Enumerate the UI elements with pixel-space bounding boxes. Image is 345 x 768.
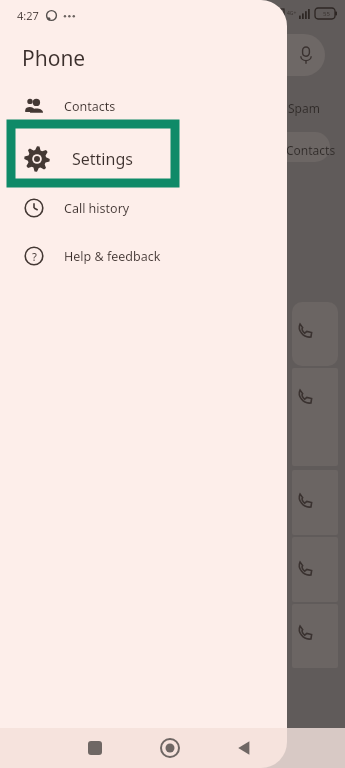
staticText: ? <box>32 249 37 264</box>
staticText: Spam <box>288 100 320 116</box>
button[interactable]: Recent apps <box>88 741 102 755</box>
staticText: 4G+ <box>287 10 297 17</box>
staticText: Contacts <box>286 142 336 158</box>
other: Voice search <box>296 45 316 65</box>
button[interactable]: Home <box>160 738 180 758</box>
staticText: 4:27 <box>17 8 39 23</box>
button[interactable]: ? <box>0 241 287 271</box>
staticText: Call history <box>64 200 130 217</box>
staticText: 55 <box>323 10 330 18</box>
button[interactable]: Call history <box>0 193 287 223</box>
button[interactable]: Contacts <box>0 91 287 121</box>
staticText: Phone <box>22 44 86 73</box>
button[interactable]: Settings <box>0 139 287 179</box>
button[interactable]: Back <box>235 739 253 757</box>
staticText: Contacts <box>64 98 116 115</box>
staticText: Help & feedback <box>64 248 161 265</box>
staticText: Settings <box>72 148 133 170</box>
